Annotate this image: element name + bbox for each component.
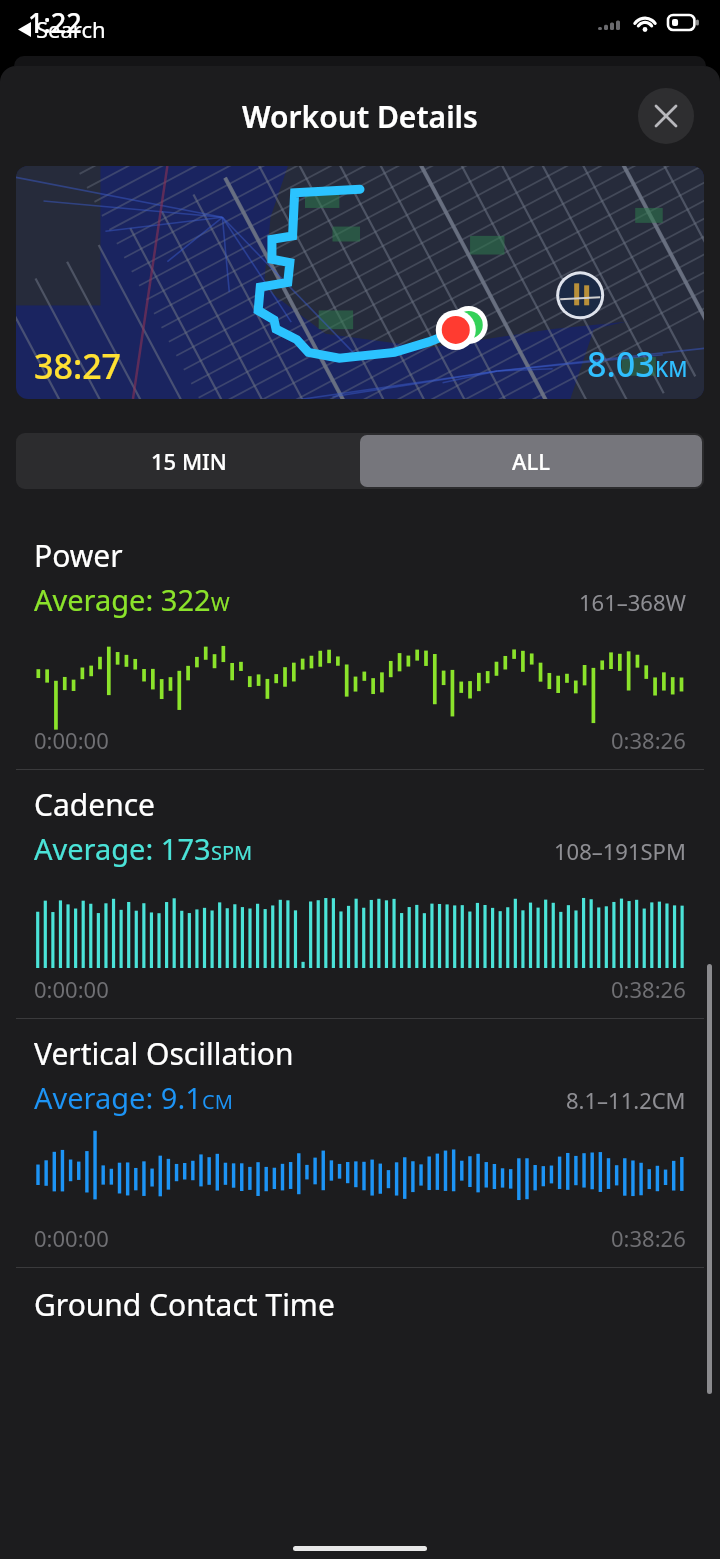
staticText: 108–191SPM — [554, 836, 686, 866]
staticText: Search — [36, 14, 106, 44]
button[interactable]: Close — [638, 88, 694, 144]
staticText: ALL — [512, 446, 550, 476]
staticText: 0:00:00 — [34, 974, 109, 1004]
staticText: 15 MIN — [151, 446, 227, 476]
staticText: SPM — [211, 839, 253, 866]
button[interactable]: ALL — [360, 435, 702, 487]
staticText: KM — [655, 355, 688, 384]
staticText: 8.1–11.2CM — [566, 1085, 686, 1115]
staticText: Ground Contact Time — [34, 1284, 335, 1325]
staticText: 0:38:26 — [611, 974, 686, 1004]
staticText: Vertical Oscillation — [34, 1033, 294, 1074]
button[interactable]: Search — [18, 14, 106, 44]
staticText: CM — [202, 1088, 233, 1115]
staticText: 1:22 — [28, 4, 82, 41]
staticText: 0:38:26 — [611, 1223, 686, 1253]
button[interactable]: 15 MIN — [18, 435, 360, 487]
staticText: Average: 322 — [34, 580, 211, 619]
staticText: W — [211, 590, 230, 617]
staticText: Average: 173 — [34, 829, 211, 868]
staticText: Workout Details — [242, 96, 478, 137]
staticText: Cadence — [34, 784, 156, 825]
staticText: Power — [34, 535, 123, 576]
staticText: 161–368W — [579, 587, 686, 617]
staticText: 38:27 — [34, 343, 122, 389]
button[interactable]: 38:27 — [16, 166, 704, 399]
staticText: 0:38:26 — [611, 725, 686, 755]
staticText: Average: 9.1 — [34, 1078, 202, 1117]
staticText: 8.03 — [587, 341, 655, 387]
staticText: 0:00:00 — [34, 1223, 109, 1253]
staticText: 0:00:00 — [34, 725, 109, 755]
